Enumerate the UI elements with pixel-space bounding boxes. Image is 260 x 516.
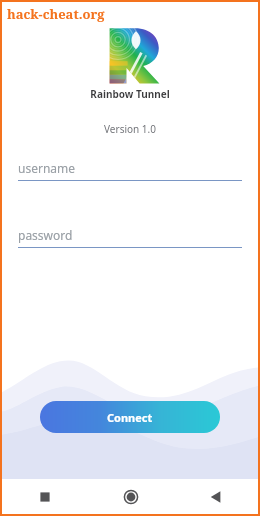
staticText: username: [18, 160, 76, 176]
staticText: Connect: [107, 410, 153, 425]
button[interactable]: Back: [173, 479, 258, 514]
staticText: Rainbow Tunnel: [90, 87, 170, 101]
staticText: hack-cheat.org: [7, 5, 105, 23]
button[interactable]: Home: [88, 479, 173, 514]
button[interactable]: Connect: [40, 401, 220, 433]
button[interactable]: username: [18, 160, 242, 181]
staticText: password: [18, 227, 73, 243]
button[interactable]: Recent apps: [2, 479, 88, 514]
staticText: Version 1.0: [104, 122, 156, 136]
button[interactable]: password: [18, 227, 242, 248]
